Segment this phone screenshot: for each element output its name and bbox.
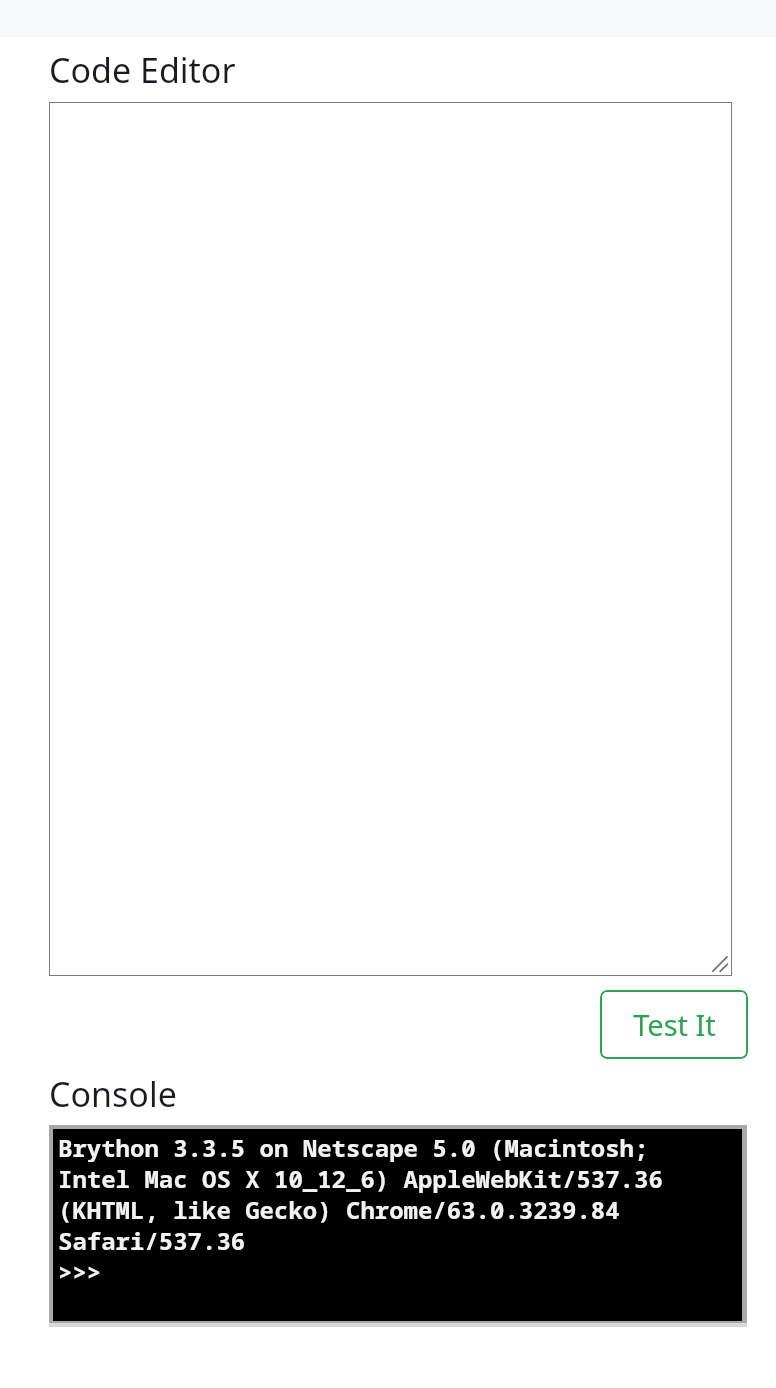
staticText: Brython 3.3.5 on Netscape 5.0 (Macintosh… [58, 1131, 649, 1162]
staticText: >>> [58, 1255, 102, 1286]
staticText: Intel Mac OS X 10_12_6) AppleWebKit/537.… [58, 1162, 663, 1193]
staticText: Code Editor [49, 47, 236, 93]
staticText: Safari/537.36 [58, 1224, 246, 1255]
button[interactable] [49, 102, 732, 976]
staticText: Console [49, 1071, 177, 1117]
button[interactable]: Brython 3.3.5 on Netscape 5.0 (Macintosh… [53, 1129, 742, 1321]
button[interactable]: Test It [600, 990, 748, 1059]
staticText: Test It [633, 1005, 716, 1044]
staticText: (KHTML, like Gecko) Chrome/63.0.3239.84 [58, 1193, 620, 1224]
